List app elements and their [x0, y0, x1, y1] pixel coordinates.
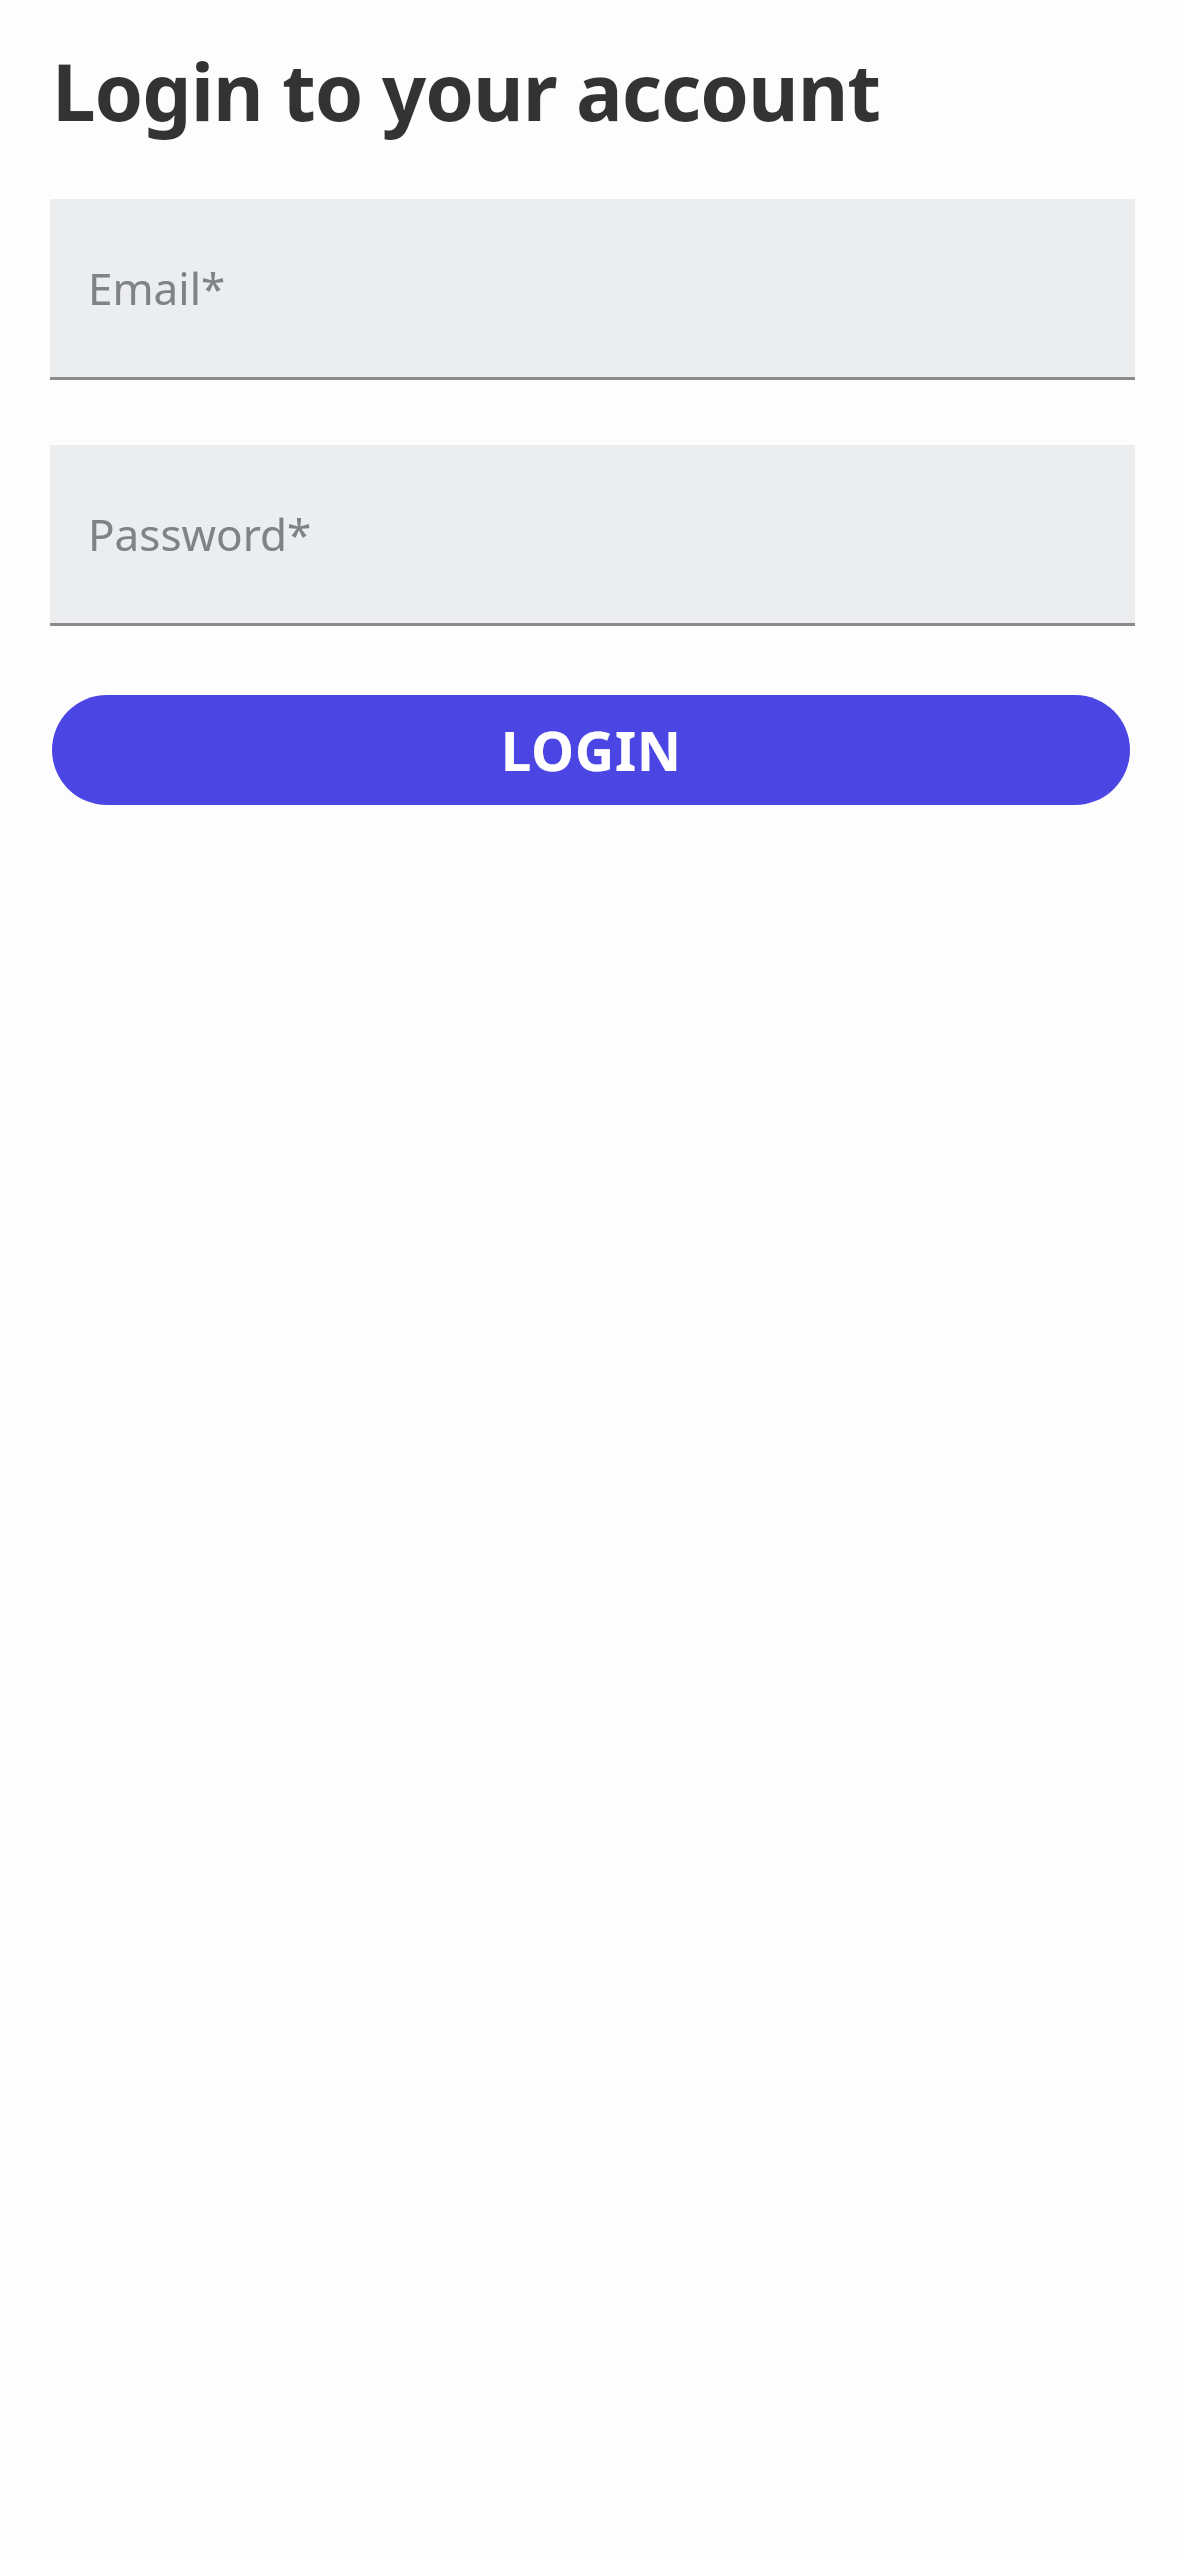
button[interactable]: LOGIN	[52, 695, 1130, 805]
button[interactable]: Email*	[50, 199, 1135, 380]
staticText: Email*	[88, 258, 226, 318]
staticText: LOGIN	[501, 713, 682, 787]
button[interactable]: Password*	[50, 445, 1135, 626]
staticText: Password*	[88, 504, 312, 564]
staticText: Login to your account	[52, 38, 881, 144]
